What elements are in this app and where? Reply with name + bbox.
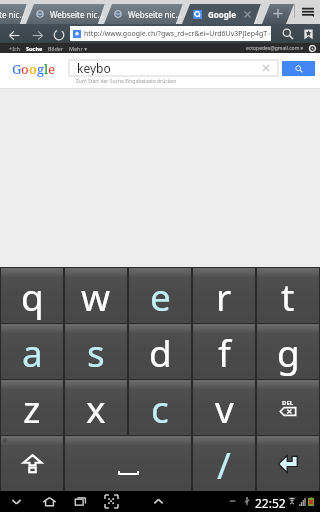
staticText: G [12, 60, 21, 78]
staticText: g [277, 327, 300, 377]
button[interactable]: d [129, 324, 191, 379]
button[interactable]: x [65, 380, 127, 435]
staticText: Webseite nic... [0, 9, 26, 20]
button[interactable]: Webseite nic... [0, 4, 28, 24]
staticText: c [151, 383, 169, 433]
staticText: e [48, 60, 55, 78]
button[interactable]: / [193, 436, 255, 491]
button[interactable]: Webseite nic... [104, 4, 184, 24]
staticText: ectopedes@gmail.com ▾ [246, 45, 304, 52]
button[interactable]: Home [40, 492, 58, 511]
button[interactable]: Google [182, 4, 262, 24]
button[interactable]: Settings [308, 44, 316, 52]
button[interactable]: f [193, 324, 255, 379]
staticText: Mehr ▾ [69, 45, 87, 52]
button[interactable]: Bilder [48, 45, 64, 52]
button[interactable]: a [1, 324, 63, 379]
button[interactable]: Search [280, 26, 296, 42]
button[interactable]: w [65, 268, 127, 323]
button[interactable]: Back [7, 492, 25, 511]
staticText: Bilder [48, 45, 64, 52]
staticText: t [281, 271, 295, 321]
button[interactable]: SHIFT [1, 436, 63, 491]
staticText: +Ich [9, 45, 21, 52]
staticText: x [86, 383, 106, 433]
button[interactable]: Close tab [243, 10, 252, 19]
button[interactable]: Suche [26, 45, 43, 52]
button[interactable]: z [1, 380, 63, 435]
button[interactable]: Forward [29, 27, 45, 43]
button[interactable]: Expand notifications [149, 492, 167, 511]
staticText: http://www.google.ch/?gws_rd=cr&ei=Urd6U… [84, 29, 268, 39]
button[interactable]: g [257, 324, 319, 379]
button[interactable]: Screenshot [102, 492, 120, 511]
staticText: keybo [77, 60, 111, 75]
staticText: z [23, 383, 41, 433]
button[interactable]: Bookmarks [300, 26, 316, 42]
staticText: q [21, 271, 44, 321]
staticText: o [29, 60, 37, 78]
button[interactable]: keybo [69, 60, 278, 76]
staticText: d [149, 327, 172, 377]
button[interactable]: http://www.google.ch/?gws_rd=cr&ei=Urd6U… [70, 26, 271, 41]
button[interactable]: c [129, 380, 191, 435]
staticText: Suche [26, 45, 43, 52]
button[interactable]: q [1, 268, 63, 323]
button[interactable]: Back [6, 27, 22, 43]
button[interactable]: e [129, 268, 191, 323]
staticText: Google [208, 9, 237, 20]
staticText: DEL [282, 399, 294, 407]
staticText: Webseite nic... [50, 9, 104, 20]
staticText: / [217, 439, 231, 489]
button[interactable]: Menu [299, 4, 316, 19]
staticText: l [44, 60, 48, 78]
button[interactable]: Clear [258, 60, 274, 76]
button[interactable]: Reload [51, 27, 67, 43]
staticText: g [37, 60, 44, 78]
staticText: f [218, 327, 231, 377]
button[interactable]: SPACE [65, 436, 191, 491]
button[interactable]: Mehr ▾ [69, 45, 87, 52]
button[interactable]: Search [282, 61, 315, 76]
button[interactable]: +Ich [9, 45, 21, 52]
staticText: r [216, 271, 232, 321]
staticText: s [87, 327, 105, 377]
staticText: a [22, 327, 43, 377]
button[interactable]: DEL [257, 380, 319, 435]
staticText: e [150, 271, 171, 321]
staticText: o [21, 60, 29, 78]
staticText: w [81, 271, 111, 321]
button[interactable]: v [193, 380, 255, 435]
staticText: v [215, 383, 234, 433]
button[interactable]: t [257, 268, 319, 323]
staticText: 22:52 [255, 495, 286, 511]
button[interactable]: Webseite nic... [26, 4, 106, 24]
button[interactable]: Recent apps [71, 492, 89, 511]
button[interactable]: ENTER [257, 436, 319, 491]
button[interactable]: r [193, 268, 255, 323]
staticText: Webseite nic... [128, 9, 182, 20]
staticText: Zum Start der Suche Eingabetaste drücken [76, 78, 177, 85]
button[interactable]: New tab [262, 4, 294, 24]
button[interactable]: s [65, 324, 127, 379]
